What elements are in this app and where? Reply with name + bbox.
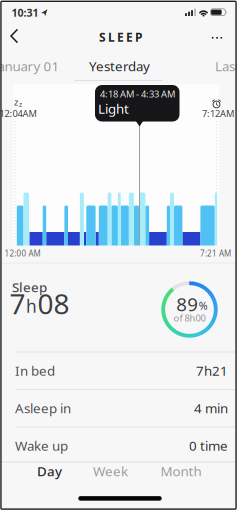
staticText: 10:31 [11, 5, 38, 20]
staticText: Day [37, 462, 62, 480]
staticText: 08 [37, 285, 69, 322]
staticText: Month [160, 462, 201, 480]
staticText: Last [215, 57, 237, 75]
staticText: 12:00 AM [4, 248, 40, 259]
button[interactable]: Week [0, 0, 237, 510]
staticText: 7h21 [196, 362, 228, 379]
staticText: In bed [15, 362, 55, 379]
staticText: January 01 [0, 57, 59, 75]
button[interactable]: Back [0, 0, 237, 510]
staticText: 7:21 AM [200, 248, 231, 259]
staticText: of 8h00 [173, 312, 205, 324]
staticText: h [26, 294, 37, 317]
staticText: 4 min [194, 399, 228, 417]
staticText: 4:18 AM - 4:33 AM [100, 88, 175, 100]
staticText: Wake up [15, 437, 68, 454]
staticText: 7:12AM [202, 107, 234, 120]
staticText: Week [93, 462, 128, 480]
button[interactable]: Yesterday [0, 0, 237, 510]
staticText: 7 [9, 285, 25, 322]
staticText: Light [98, 100, 129, 117]
staticText: E [117, 29, 124, 45]
button[interactable]: Day [0, 0, 237, 510]
button[interactable]: Previous day January 01 [0, 0, 237, 510]
staticText: 0 time [189, 437, 228, 454]
staticText: L [108, 29, 115, 45]
staticText: 12:04AM [0, 107, 36, 120]
button[interactable]: Month [0, 0, 237, 510]
staticText: Asleep in [15, 399, 71, 417]
staticText: Yesterday [89, 57, 150, 75]
staticText: S [99, 29, 106, 45]
staticText: z [14, 96, 18, 108]
staticText: E [126, 29, 133, 45]
staticText: P [135, 29, 142, 45]
staticText: % [199, 298, 208, 313]
button[interactable]: Next period [0, 0, 237, 510]
staticText: z [19, 100, 22, 109]
staticText: Sleep [12, 278, 47, 296]
button[interactable]: More options [0, 0, 237, 510]
staticText: 89 [176, 292, 198, 316]
